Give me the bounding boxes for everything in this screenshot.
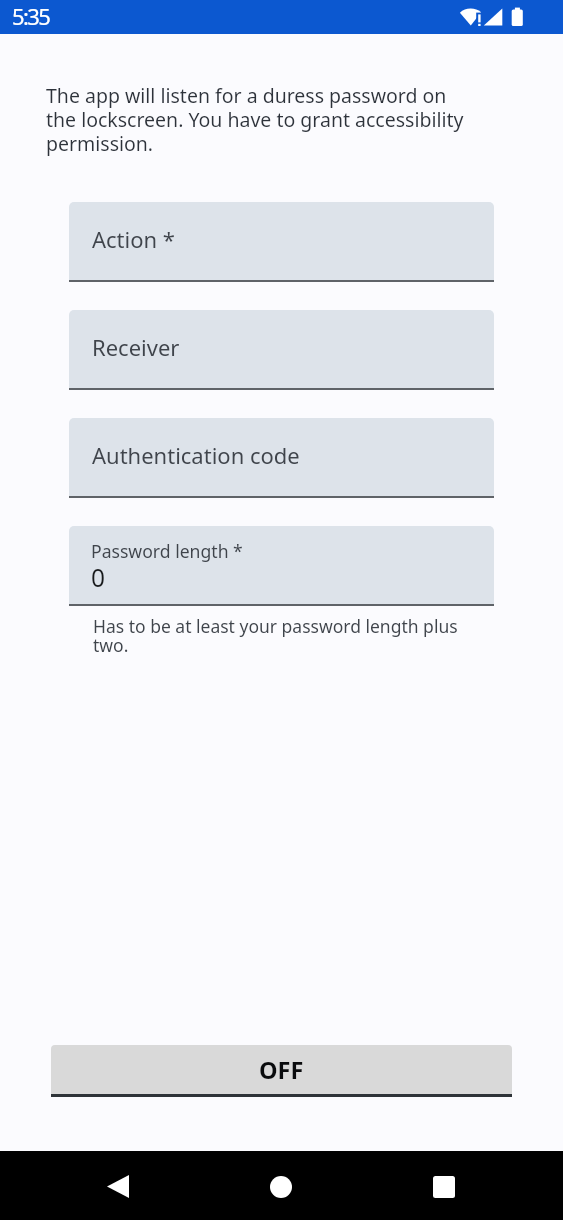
button[interactable]: Recent apps [415,1158,472,1215]
button[interactable]: OFF [51,1045,512,1094]
staticText: Password length * [91,539,243,563]
staticText: Has to be at least your password length … [93,614,465,657]
staticText: The app will listen for a duress passwor… [46,82,466,157]
button[interactable]: Action * [69,202,494,280]
staticText: Authentication code [92,440,300,470]
staticText: 0 [91,561,106,594]
staticText: Action * [92,224,175,254]
staticText: 5:35 [12,1,50,31]
button[interactable]: Authentication code [69,418,494,496]
staticText: OFF [259,1054,304,1086]
button[interactable]: Password length * [69,526,494,604]
button[interactable]: Back [89,1158,146,1215]
button[interactable]: Receiver [69,310,494,388]
staticText: Receiver [92,332,180,362]
button[interactable]: Home [252,1158,309,1215]
